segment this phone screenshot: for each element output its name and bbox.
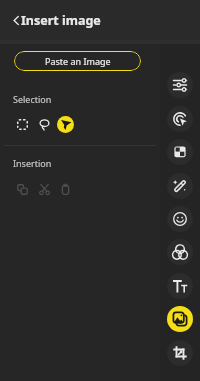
staticText: Paste an Image (45, 55, 111, 67)
button[interactable]: Copy (14, 181, 31, 198)
button[interactable]: Magic select (57, 116, 74, 133)
button[interactable]: Rectangle select (14, 116, 31, 133)
staticText: Insert image (21, 12, 101, 29)
button[interactable]: Back (6, 10, 26, 30)
staticText: Insertion (13, 157, 52, 169)
button[interactable]: Select (167, 106, 193, 132)
button[interactable]: Adjust (167, 72, 193, 98)
button[interactable]: Retouch (167, 173, 193, 199)
button[interactable]: Background (167, 139, 193, 165)
button[interactable]: Crop (167, 340, 193, 366)
button[interactable]: Image (167, 306, 193, 332)
button[interactable]: Paste (57, 181, 74, 198)
button[interactable]: Lasso select (36, 116, 53, 133)
button[interactable]: Text (167, 273, 193, 299)
staticText: Selection (13, 93, 52, 105)
button[interactable]: Paste an Image (14, 51, 141, 71)
button[interactable]: Cut (36, 181, 53, 198)
button[interactable]: Color (167, 239, 193, 265)
button[interactable]: Stickers (167, 206, 193, 232)
